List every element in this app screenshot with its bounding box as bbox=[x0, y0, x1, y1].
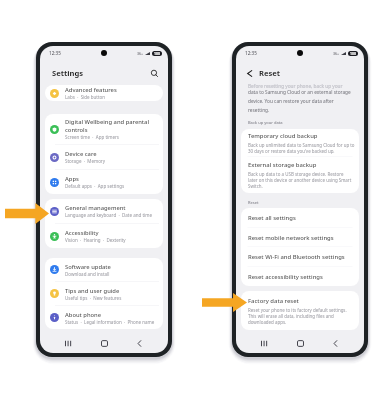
staticText: Tips and user guide bbox=[65, 287, 120, 295]
staticText: Storage · Memory bbox=[65, 158, 106, 164]
button[interactable]: Reset accessibility settings bbox=[241, 267, 359, 286]
staticText: Reset bbox=[248, 200, 259, 205]
button[interactable]: Navigate up bbox=[244, 68, 255, 79]
staticText: 12:35 bbox=[245, 50, 257, 56]
button[interactable]: Software update bbox=[45, 258, 163, 281]
button[interactable]: Digital Wellbeing and parental controls bbox=[45, 114, 163, 144]
staticText: Temporary cloud backup bbox=[248, 132, 318, 140]
staticText: Digital Wellbeing and parental controls bbox=[65, 118, 149, 134]
staticText: Factory data reset bbox=[248, 297, 299, 305]
staticText: Software update bbox=[65, 263, 111, 271]
staticText: Before resetting your phone, back up you… bbox=[248, 83, 343, 89]
staticText: Labs · Side button bbox=[65, 94, 106, 100]
staticText: Settings bbox=[52, 68, 84, 78]
staticText: 36+ bbox=[333, 51, 340, 56]
button[interactable]: Accessibility bbox=[45, 224, 163, 248]
staticText: 12:35 bbox=[49, 50, 61, 56]
staticText: Advanced features bbox=[65, 86, 117, 94]
staticText: Language and keyboard · Date and time bbox=[65, 212, 152, 218]
staticText: Apps bbox=[65, 175, 79, 183]
staticText: data to Samsung Cloud or an external sto… bbox=[248, 89, 351, 113]
button[interactable]: Advanced features bbox=[45, 85, 163, 101]
staticText: Useful tips · New features bbox=[65, 295, 122, 301]
staticText: External storage backup bbox=[248, 161, 317, 169]
button[interactable]: Temporary cloud backup bbox=[241, 129, 359, 157]
button[interactable]: Factory data reset bbox=[241, 291, 359, 330]
button[interactable]: Back bbox=[329, 337, 342, 350]
button[interactable]: Reset Wi-Fi and Bluetooth settings bbox=[241, 247, 359, 267]
staticText: Download and install bbox=[65, 271, 110, 277]
staticText: Device care bbox=[65, 150, 97, 158]
staticText: About phone bbox=[65, 311, 102, 319]
button[interactable]: Recent apps bbox=[62, 337, 75, 350]
staticText: Reset Wi-Fi and Bluetooth settings bbox=[248, 253, 345, 261]
staticText: Reset accessibility settings bbox=[248, 273, 323, 281]
staticText: Reset your phone to its factory default … bbox=[248, 307, 347, 325]
staticText: Accessibility bbox=[65, 229, 99, 237]
button[interactable]: Device care bbox=[45, 145, 163, 169]
button[interactable]: Reset mobile network settings bbox=[241, 228, 359, 247]
button[interactable]: Home bbox=[294, 337, 307, 350]
button[interactable]: Search bbox=[149, 68, 160, 79]
button[interactable]: Recent apps bbox=[258, 337, 271, 350]
staticText: General management bbox=[65, 204, 126, 212]
staticText: Screen time · App timers bbox=[65, 134, 119, 140]
button[interactable]: Home bbox=[98, 337, 111, 350]
staticText: 100 bbox=[350, 51, 356, 56]
staticText: Back up unlimited data to Samsung Cloud … bbox=[248, 142, 355, 154]
button[interactable]: Apps bbox=[45, 170, 163, 194]
staticText: Reset all settings bbox=[248, 214, 296, 222]
button[interactable]: General management bbox=[45, 199, 163, 223]
staticText: Reset bbox=[259, 68, 281, 78]
staticText: Vision · Hearing · Dexterity bbox=[65, 237, 126, 243]
button[interactable]: Reset all settings bbox=[241, 208, 359, 228]
staticText: Back up your data bbox=[248, 120, 283, 125]
button[interactable]: External storage backup bbox=[241, 157, 359, 193]
staticText: Reset mobile network settings bbox=[248, 234, 334, 242]
staticText: Default apps · App settings bbox=[65, 183, 125, 189]
staticText: Back up data to a USB storage device. Re… bbox=[248, 171, 352, 189]
button[interactable]: About phone bbox=[45, 306, 163, 329]
button[interactable]: Tips and user guide bbox=[45, 282, 163, 305]
staticText: Status · Legal information · Phone name bbox=[65, 319, 155, 325]
staticText: 100 bbox=[154, 51, 160, 56]
staticText: 36+ bbox=[137, 51, 144, 56]
button[interactable]: Back bbox=[133, 337, 146, 350]
